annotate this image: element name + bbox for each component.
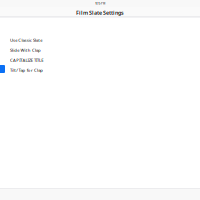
staticText: 10:15 PM: [95, 2, 105, 5]
staticText: Film Slate Settings: [76, 9, 124, 16]
button[interactable]: Use Classic Slate: [0, 35, 200, 45]
staticText: Use Classic Slate: [10, 37, 42, 43]
button[interactable]: Tilt/Tap for Clap: [0, 65, 200, 75]
button[interactable]: CAPITALIZE TITLE: [0, 55, 200, 65]
staticText: Tilt/Tap for Clap: [10, 67, 43, 73]
staticText: CAPITALIZE TITLE: [10, 57, 43, 63]
button[interactable]: Slide With Clap: [0, 45, 200, 55]
staticText: Slide With Clap: [10, 47, 41, 53]
